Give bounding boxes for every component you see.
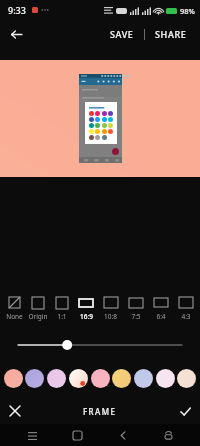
button[interactable]: Background style 2: [24, 368, 45, 389]
button[interactable]: Home: [64, 424, 90, 446]
button[interactable]: Background style 3: [46, 368, 67, 389]
staticText: FRAME: [83, 406, 117, 417]
staticText: 1:1: [57, 312, 67, 321]
staticText: 9:33: [8, 4, 26, 16]
button[interactable]: 6:4: [148, 294, 173, 323]
staticText: 98%: [180, 6, 195, 16]
button[interactable]: 1:1: [50, 294, 74, 323]
button[interactable]: Background style 1: [3, 368, 24, 389]
button[interactable]: Background style 8: [155, 368, 176, 389]
button[interactable]: Background style 6: [111, 368, 132, 389]
button[interactable]: 4:3: [173, 294, 198, 323]
staticText: 6:4: [156, 312, 166, 321]
staticText: None: [6, 312, 23, 321]
button[interactable]: Back: [4, 22, 28, 46]
button[interactable]: Recents: [19, 424, 45, 446]
button[interactable]: 10:8: [98, 294, 123, 323]
staticText: SAVE: [110, 28, 134, 40]
button[interactable]: None: [2, 294, 26, 323]
button[interactable]: Cancel: [4, 400, 26, 422]
button[interactable]: Origin: [26, 294, 50, 323]
button[interactable]: Background style 4: [68, 368, 89, 389]
staticText: 16:9: [80, 312, 93, 321]
button[interactable]: Back: [110, 424, 136, 446]
button[interactable]: SAVE: [105, 24, 139, 44]
button[interactable]: Screenshot: [155, 424, 181, 446]
button[interactable]: Adjust: [18, 334, 182, 356]
staticText: Origin: [28, 312, 48, 321]
button[interactable]: Background style 7: [133, 368, 154, 389]
staticText: 10:8: [104, 312, 117, 321]
button[interactable]: Confirm: [174, 400, 196, 422]
staticText: 7:5: [131, 312, 141, 321]
staticText: SHARE: [155, 28, 187, 40]
button[interactable]: 7:5: [123, 294, 148, 323]
button[interactable]: 16:9: [74, 294, 98, 323]
button[interactable]: SHARE: [150, 24, 192, 44]
button[interactable]: Background style 5: [90, 368, 111, 389]
button[interactable]: Background style 9: [176, 368, 197, 389]
staticText: 4:3: [181, 312, 191, 321]
